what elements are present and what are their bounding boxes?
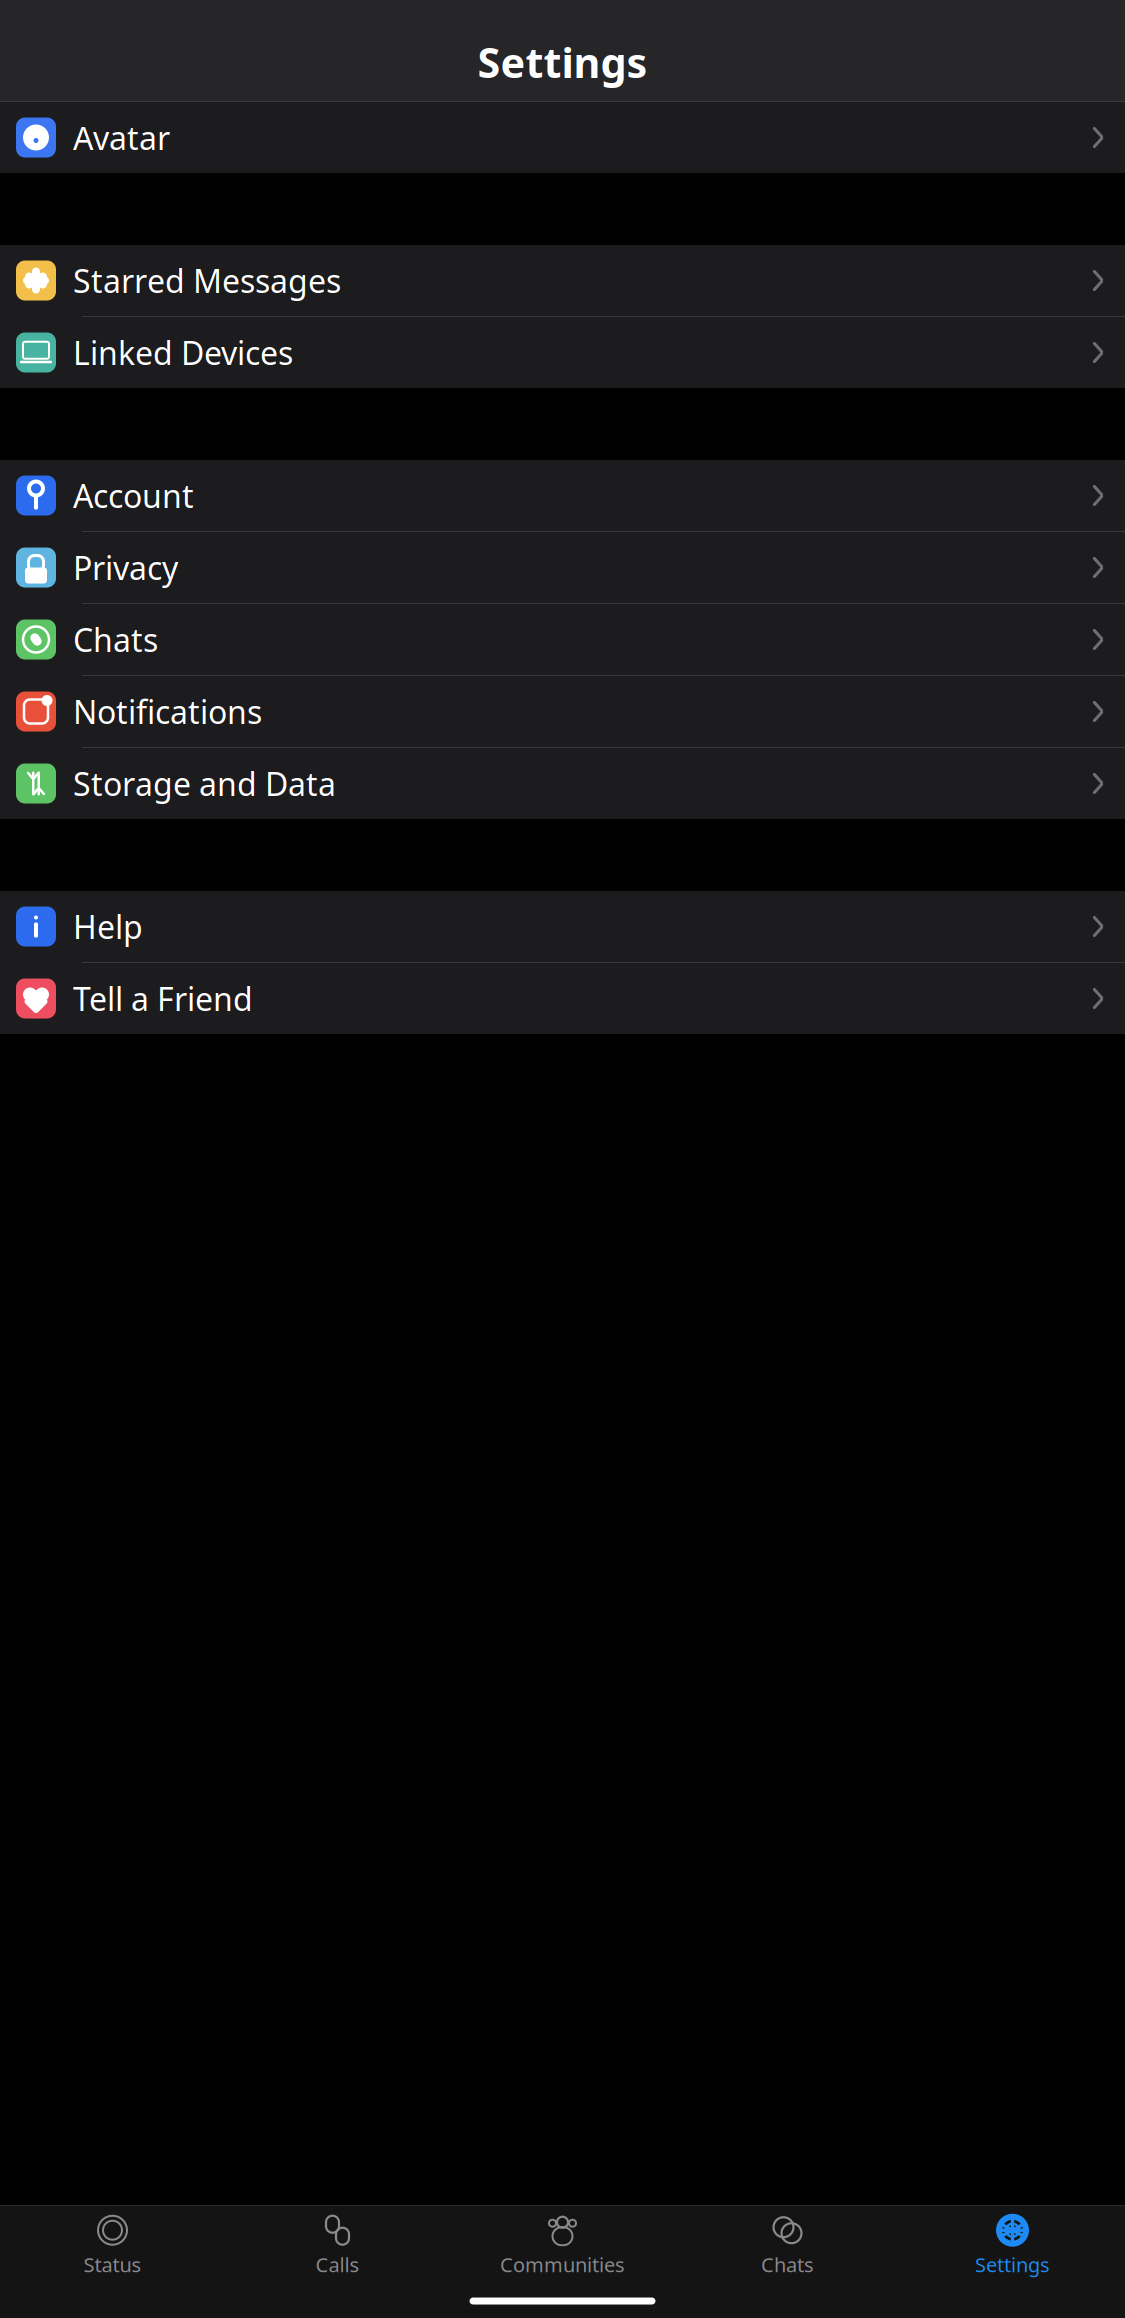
staticText: Account [73,474,194,517]
button[interactable]: Storage and Data [0,748,1125,819]
button[interactable]: Communities [450,2204,675,2286]
staticText: Help [73,905,143,948]
button[interactable]: Help [0,891,1125,963]
button[interactable]: Starred Messages [0,245,1125,317]
staticText: Chats [73,618,158,661]
staticText: Tell a Friend [73,977,253,1020]
button[interactable]: Notifications [0,676,1125,748]
staticText: Linked Devices [73,331,293,374]
staticText: Storage and Data [73,762,336,805]
staticText: Avatar [73,116,170,159]
button[interactable]: Chats [675,2204,900,2286]
button[interactable]: Avatar [0,102,1125,173]
staticText: Starred Messages [73,259,341,302]
button[interactable]: Tell a Friend [0,963,1125,1034]
button[interactable]: Status [0,2204,225,2286]
button[interactable]: Chats [0,604,1125,676]
button[interactable]: Settings [900,2204,1125,2286]
staticText: Status [83,2251,141,2278]
staticText: Notifications [73,690,262,733]
staticText: Chats [761,2251,814,2278]
staticText: Settings [477,35,647,89]
staticText: Settings [975,2251,1050,2278]
staticText: Calls [315,2251,359,2278]
button[interactable]: Privacy [0,532,1125,604]
staticText: Communities [500,2251,625,2278]
staticText: Privacy [73,546,178,589]
button[interactable]: Linked Devices [0,317,1125,388]
button[interactable]: Account [0,460,1125,532]
button[interactable]: Calls [225,2204,450,2286]
